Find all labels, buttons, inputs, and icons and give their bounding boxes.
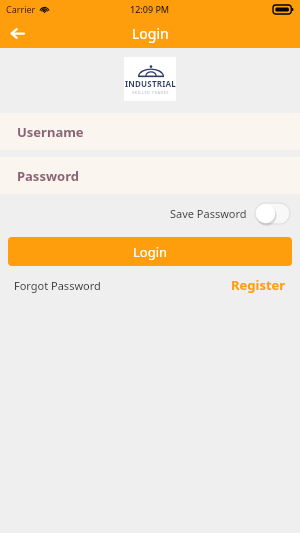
staticText: 12:09 PM bbox=[130, 3, 170, 15]
button[interactable]: Login bbox=[8, 237, 292, 266]
staticText: Carrier bbox=[6, 3, 36, 15]
button[interactable]: Back bbox=[0, 18, 34, 48]
staticText: Password bbox=[17, 167, 79, 185]
staticText: Login bbox=[133, 243, 168, 261]
staticText: INDUSTRIAL bbox=[125, 78, 176, 89]
staticText: Forgot Password bbox=[14, 278, 101, 293]
staticText: Username bbox=[17, 123, 84, 141]
staticText: SKILLED TRADES bbox=[132, 90, 169, 95]
button[interactable]: Username bbox=[0, 113, 300, 150]
button[interactable]: Save Password bbox=[255, 203, 290, 224]
button[interactable]: Forgot Password bbox=[14, 276, 101, 295]
staticText: Login bbox=[132, 24, 169, 43]
staticText: Register bbox=[231, 276, 286, 294]
button[interactable]: Password bbox=[0, 157, 300, 194]
button[interactable]: Register bbox=[231, 274, 286, 296]
staticText: Save Password bbox=[170, 206, 247, 221]
